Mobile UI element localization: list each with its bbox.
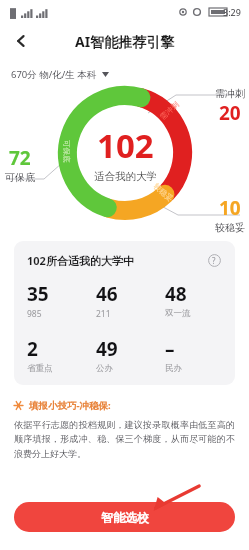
staticText: AI智能推荐引擎 (75, 32, 175, 51)
button[interactable]: Back (6, 26, 36, 56)
staticText: 需冲刺 (215, 87, 245, 100)
staticText: 20 (219, 100, 241, 126)
staticText: 10 (219, 195, 241, 221)
staticText: – (165, 336, 175, 362)
staticText: 需冲刺 (158, 99, 181, 122)
staticText: 46 (96, 281, 118, 307)
staticText: 双一流 (165, 308, 191, 319)
staticText: 可保底 (5, 171, 35, 184)
staticText: 可保底 (62, 140, 71, 163)
button[interactable]: 670分 物/化/生 本科 (11, 66, 109, 83)
staticText: 102所合适我的大学中 (27, 253, 134, 268)
staticText: 670分 物/化/生 本科 (11, 68, 97, 81)
staticText: 211 (96, 308, 111, 320)
staticText: 民办 (165, 363, 182, 374)
staticText: 35 (27, 281, 49, 307)
staticText: 公办 (96, 363, 113, 374)
staticText: 72 (9, 145, 31, 171)
staticText: 省重点 (27, 363, 53, 374)
staticText: 48 (165, 281, 187, 307)
staticText: 3:29 (223, 6, 241, 18)
staticText: 2 (27, 336, 38, 362)
staticText: 较稳妥 (215, 221, 245, 234)
button[interactable]: 智能选校 (14, 502, 235, 532)
staticText: 智能选校 (101, 510, 149, 525)
staticText: 填报小技巧-冲稳保: (29, 399, 111, 412)
staticText: 102 (97, 123, 154, 168)
staticText: 适合我的大学 (94, 170, 157, 183)
button[interactable]: Help (206, 252, 222, 268)
staticText: 985 (27, 308, 42, 320)
staticText: ? (212, 255, 216, 266)
staticText: 较稳妥 (152, 181, 175, 204)
staticText: 依据平行志愿的投档规则，建议按录取概率由低至高的顺序填报，形成冲、稳、保三个梯度… (14, 419, 235, 460)
staticText: 49 (96, 336, 118, 362)
